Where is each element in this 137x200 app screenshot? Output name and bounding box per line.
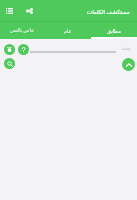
- button[interactable]: Search: [4, 58, 15, 69]
- staticText: خاص بالنص: [10, 27, 35, 34]
- button[interactable]: Help: [18, 44, 29, 55]
- staticText: عام: [64, 28, 72, 34]
- staticText: مطابق: [107, 28, 121, 34]
- staticText: مستكشف الكلمات: [87, 8, 130, 15]
- button[interactable]: خاص بالنص: [0, 22, 45, 39]
- button[interactable]: Menu: [1, 0, 17, 22]
- button[interactable]: Delete: [4, 44, 15, 55]
- button[interactable]: Share: [22, 0, 36, 22]
- staticText: بحث: [122, 46, 131, 51]
- button[interactable]: بحث: [30, 44, 131, 54]
- button[interactable]: مطابق: [91, 22, 137, 39]
- button[interactable]: Scroll to top: [122, 58, 135, 71]
- button[interactable]: عام: [45, 22, 91, 39]
